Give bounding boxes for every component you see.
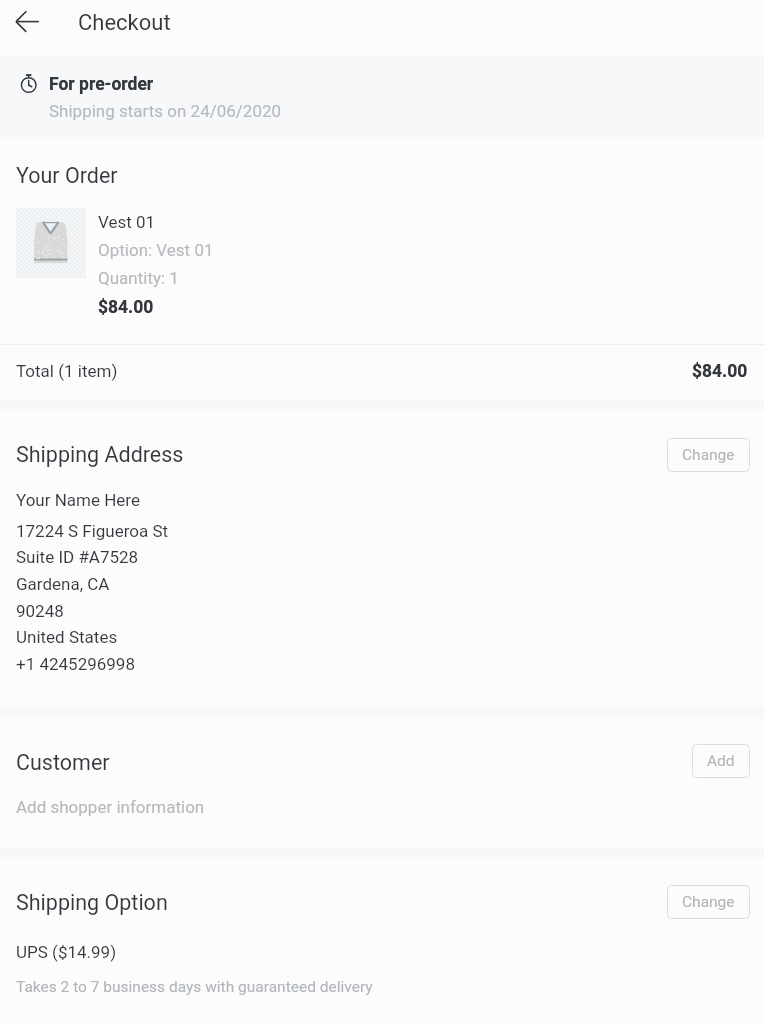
staticText: Customer [16, 750, 110, 775]
staticText: UPS ($14.99) [16, 942, 117, 962]
staticText: Shipping Option [16, 890, 168, 915]
staticText: Change [682, 446, 735, 464]
staticText: For pre-order [49, 74, 154, 95]
staticText: Shipping Address [16, 442, 184, 467]
staticText: $84.00 [98, 297, 154, 318]
staticText: Checkout [78, 10, 171, 36]
staticText: Gardena, CA [16, 574, 110, 594]
staticText: Shipping starts on 24/06/2020 [49, 101, 282, 121]
staticText: Option: Vest 01 [98, 240, 214, 260]
staticText: Total (1 item) [16, 361, 118, 381]
staticText: +1 4245296998 [16, 654, 135, 674]
staticText: Your Name Here [16, 490, 140, 510]
staticText: 17224 S Figueroa St [16, 521, 169, 541]
staticText: Change [682, 893, 735, 911]
staticText: United States [16, 627, 118, 647]
button[interactable]: Change [667, 438, 750, 472]
staticText: Quantity: 1 [98, 268, 179, 288]
staticText: Add shopper information [16, 797, 205, 817]
staticText: Add [707, 752, 735, 770]
staticText: Vest 01 [98, 212, 156, 232]
staticText: For pre-order [49, 74, 154, 95]
staticText: Takes 2 to 7 business days with guarante… [16, 978, 373, 996]
button[interactable]: Back [0, 0, 56, 46]
staticText: Suite ID #A7528 [16, 547, 139, 567]
staticText: $84.00 [692, 361, 748, 382]
staticText: $84.00 [98, 297, 154, 318]
button[interactable]: Add [692, 744, 750, 778]
staticText: Your Order [16, 163, 118, 188]
button[interactable]: Change [667, 885, 750, 919]
staticText: $84.00 [692, 361, 748, 382]
staticText: 90248 [16, 601, 64, 621]
